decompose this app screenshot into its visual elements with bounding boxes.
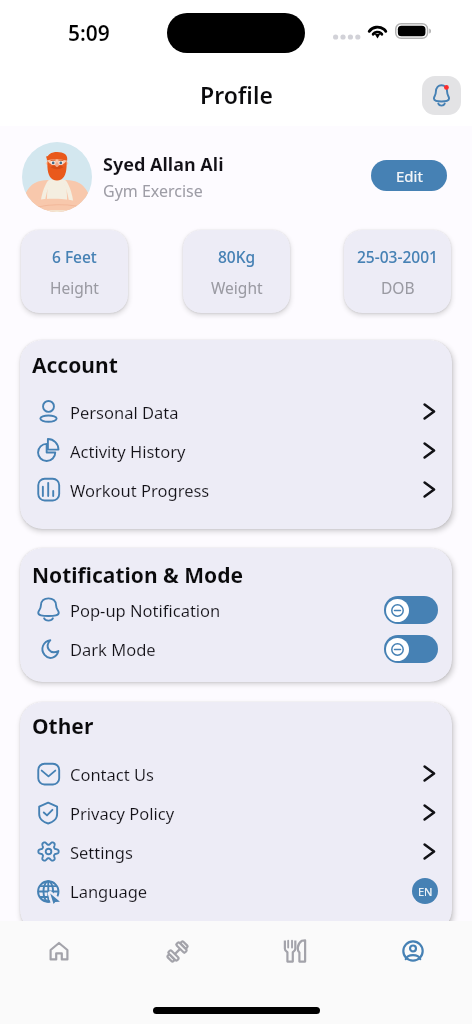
button[interactable]: 80Kg bbox=[183, 230, 290, 313]
staticText: Personal Data bbox=[70, 401, 421, 423]
button[interactable]: Pop-up Notification bbox=[37, 590, 438, 629]
button[interactable]: Toggle bbox=[384, 635, 438, 663]
staticText: Weight bbox=[211, 277, 263, 298]
staticText: Language bbox=[70, 880, 412, 902]
button[interactable]: Dark Mode bbox=[37, 629, 438, 668]
staticText: Privacy Policy bbox=[70, 802, 421, 824]
staticText: Height bbox=[50, 277, 99, 298]
staticText: Profile bbox=[200, 79, 273, 110]
staticText: Other bbox=[32, 712, 94, 741]
staticText: DOB bbox=[381, 277, 415, 298]
staticText: EN bbox=[418, 884, 433, 899]
button[interactable]: 25-03-2001 bbox=[344, 230, 451, 313]
staticText: 5:09 bbox=[68, 19, 110, 48]
button[interactable]: Meals bbox=[236, 921, 354, 981]
staticText: Workout Progress bbox=[70, 479, 421, 501]
staticText: Contact Us bbox=[70, 763, 421, 785]
staticText: Pop-up Notification bbox=[70, 599, 384, 621]
staticText: 25-03-2001 bbox=[357, 246, 438, 267]
staticText: 6 Feet bbox=[52, 246, 97, 267]
button[interactable]: EN bbox=[412, 878, 438, 904]
button[interactable]: Edit bbox=[371, 160, 447, 191]
staticText: Account bbox=[32, 351, 118, 380]
staticText: Dark Mode bbox=[70, 638, 384, 660]
button[interactable]: 6 Feet bbox=[21, 230, 128, 313]
staticText: Syed Allan Ali bbox=[103, 152, 224, 177]
button[interactable]: Privacy Policy bbox=[37, 793, 438, 832]
staticText: 80Kg bbox=[218, 246, 256, 267]
button[interactable]: Profile bbox=[354, 921, 472, 981]
button[interactable]: Settings bbox=[37, 832, 438, 871]
staticText: Notification & Mode bbox=[32, 561, 243, 590]
staticText: Settings bbox=[70, 841, 421, 863]
staticText: Activity History bbox=[70, 440, 421, 462]
staticText: Gym Exercise bbox=[103, 180, 203, 202]
button[interactable]: Contact Us bbox=[37, 754, 438, 793]
button[interactable]: Activity History bbox=[37, 431, 438, 470]
button[interactable]: Home bbox=[0, 921, 118, 981]
button[interactable]: Personal Data bbox=[37, 392, 438, 431]
button[interactable]: Workout Progress bbox=[37, 470, 438, 509]
button[interactable]: Workout bbox=[118, 921, 236, 981]
button[interactable]: Notifications bbox=[422, 76, 461, 115]
button[interactable]: Language bbox=[37, 871, 438, 910]
staticText: Edit bbox=[396, 166, 423, 186]
button[interactable]: Toggle bbox=[384, 596, 438, 624]
